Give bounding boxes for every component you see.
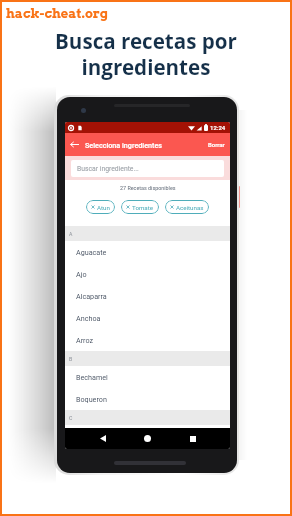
staticText: hack-cheat.org [6, 6, 109, 22]
staticText: 27 Recetas disponibles [120, 185, 176, 191]
staticText: Boqueron [76, 395, 107, 403]
button[interactable]: Aceitunas [165, 200, 209, 214]
staticText: 12:24 [210, 124, 226, 131]
staticText: Aceitunas [176, 204, 204, 211]
button[interactable]: Boqueron [65, 388, 230, 410]
staticText: Selecciona ingredientes [85, 141, 162, 149]
staticText: C [69, 415, 73, 421]
staticText: B [69, 356, 73, 362]
staticText: Arroz [76, 336, 94, 344]
staticText: Anchoa [76, 314, 101, 322]
button[interactable]: Atun [86, 200, 115, 214]
button[interactable]: Borrar [203, 137, 230, 152]
button[interactable]: Home [140, 431, 155, 446]
button[interactable]: Back [95, 431, 110, 446]
button[interactable]: Aguacate [65, 241, 230, 263]
button[interactable]: Tomate [121, 200, 159, 214]
button[interactable]: Ajo [65, 263, 230, 285]
staticText: Ajo [76, 270, 87, 278]
button[interactable]: Recent apps [185, 431, 200, 446]
button[interactable]: Anchoa [65, 307, 230, 329]
button[interactable]: Back [68, 138, 81, 151]
staticText: Buscar ingrediente... [77, 165, 139, 173]
button[interactable]: Bechamel [65, 366, 230, 388]
staticText: Bechamel [76, 373, 108, 381]
staticText: Tomate [132, 204, 154, 211]
button[interactable]: Arroz [65, 329, 230, 351]
staticText: A [69, 231, 73, 237]
staticText: Busca recetas por ingredientes [0, 27, 292, 81]
button[interactable]: Buscar ingrediente... [71, 160, 224, 177]
staticText: Borrar [208, 141, 225, 148]
staticText: Atun [97, 204, 110, 211]
staticText: Aguacate [76, 248, 107, 256]
button[interactable]: Alcaparra [65, 285, 230, 307]
staticText: Alcaparra [76, 292, 107, 300]
